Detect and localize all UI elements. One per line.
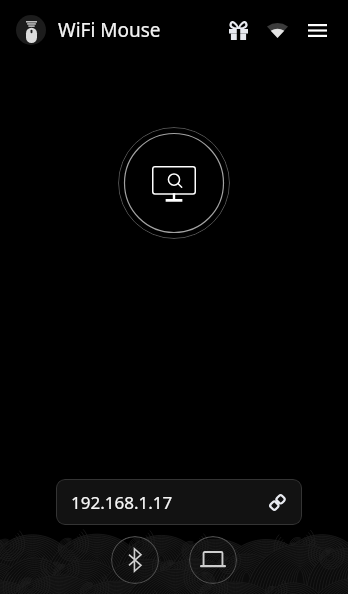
button[interactable]: Bluetooth <box>111 536 159 584</box>
button[interactable]: Scan for computers <box>118 127 230 239</box>
staticText: WiFi Mouse <box>58 17 161 43</box>
button[interactable]: Menu <box>299 12 335 48</box>
button[interactable]: Gift <box>220 12 256 48</box>
button[interactable]: 192.168.1.17 <box>56 479 302 525</box>
button[interactable]: Connect to computer <box>189 536 237 584</box>
staticText: 192.168.1.17 <box>71 491 173 514</box>
button[interactable]: WiFi status <box>259 11 295 47</box>
button[interactable]: WiFi Mouse logo <box>16 15 46 45</box>
